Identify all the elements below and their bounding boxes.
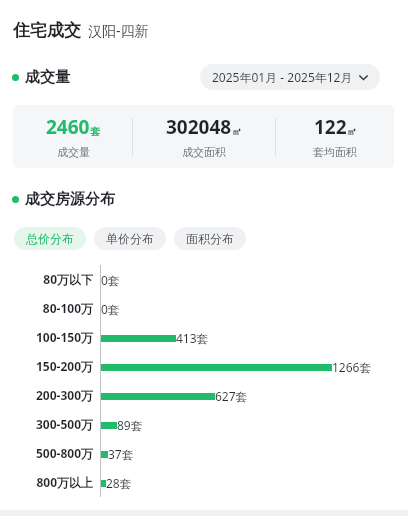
button[interactable]: 80万以下 (0, 271, 93, 287)
staticText: 成交量 (57, 145, 90, 159)
staticText: 122 (314, 114, 347, 140)
staticText: 0套 (101, 301, 120, 317)
staticText: 2025年01月 - 2025年12月 (212, 69, 353, 85)
button[interactable]: 800万以上 (0, 474, 93, 490)
staticText: 汉阳-四新 (88, 21, 149, 40)
staticText: ㎡ (347, 125, 357, 138)
staticText: 住宅成交 (13, 20, 81, 41)
staticText: 800万以上 (0, 474, 93, 490)
staticText: 100-150万 (0, 329, 93, 345)
staticText: 300-500万 (0, 416, 93, 432)
staticText: 成交量 (25, 68, 70, 87)
staticText: 1266套 (332, 359, 372, 375)
staticText: 面积分布 (186, 231, 234, 246)
staticText: 成交面积 (182, 145, 226, 159)
staticText: 80万以下 (0, 271, 93, 287)
button[interactable]: 100-150万 (0, 329, 93, 345)
button[interactable]: 2460 (13, 105, 394, 168)
staticText: 413套 (176, 330, 209, 346)
button[interactable]: 总价分布 (14, 227, 86, 250)
button[interactable]: 200-300万 (0, 387, 93, 403)
staticText: 200-300万 (0, 387, 93, 403)
staticText: 80-100万 (0, 300, 93, 316)
staticText: ㎡ (232, 125, 242, 138)
staticText: 套 (90, 125, 100, 138)
button[interactable]: 500-800万 (0, 445, 93, 461)
button[interactable]: 150-200万 (0, 358, 93, 374)
other: 展开日期选择 (359, 73, 368, 82)
button[interactable]: 2025年01月 - 2025年12月 (200, 64, 380, 90)
button[interactable]: 80-100万 (0, 300, 93, 316)
button[interactable]: 300-500万 (0, 416, 93, 432)
staticText: 500-800万 (0, 445, 93, 461)
staticText: 627套 (215, 388, 248, 404)
staticText: 150-200万 (0, 358, 93, 374)
staticText: 套均面积 (313, 145, 357, 159)
staticText: 89套 (117, 417, 143, 433)
staticText: 2460 (46, 114, 90, 140)
staticText: 成交房源分布 (25, 190, 115, 209)
staticText: 302048 (166, 114, 232, 140)
staticText: 0套 (101, 272, 120, 288)
button[interactable]: 面积分布 (174, 227, 246, 250)
staticText: 28套 (106, 475, 132, 491)
staticText: 单价分布 (106, 231, 154, 246)
button[interactable]: 单价分布 (94, 227, 166, 250)
staticText: 总价分布 (26, 231, 74, 246)
staticText: 37套 (108, 446, 134, 462)
